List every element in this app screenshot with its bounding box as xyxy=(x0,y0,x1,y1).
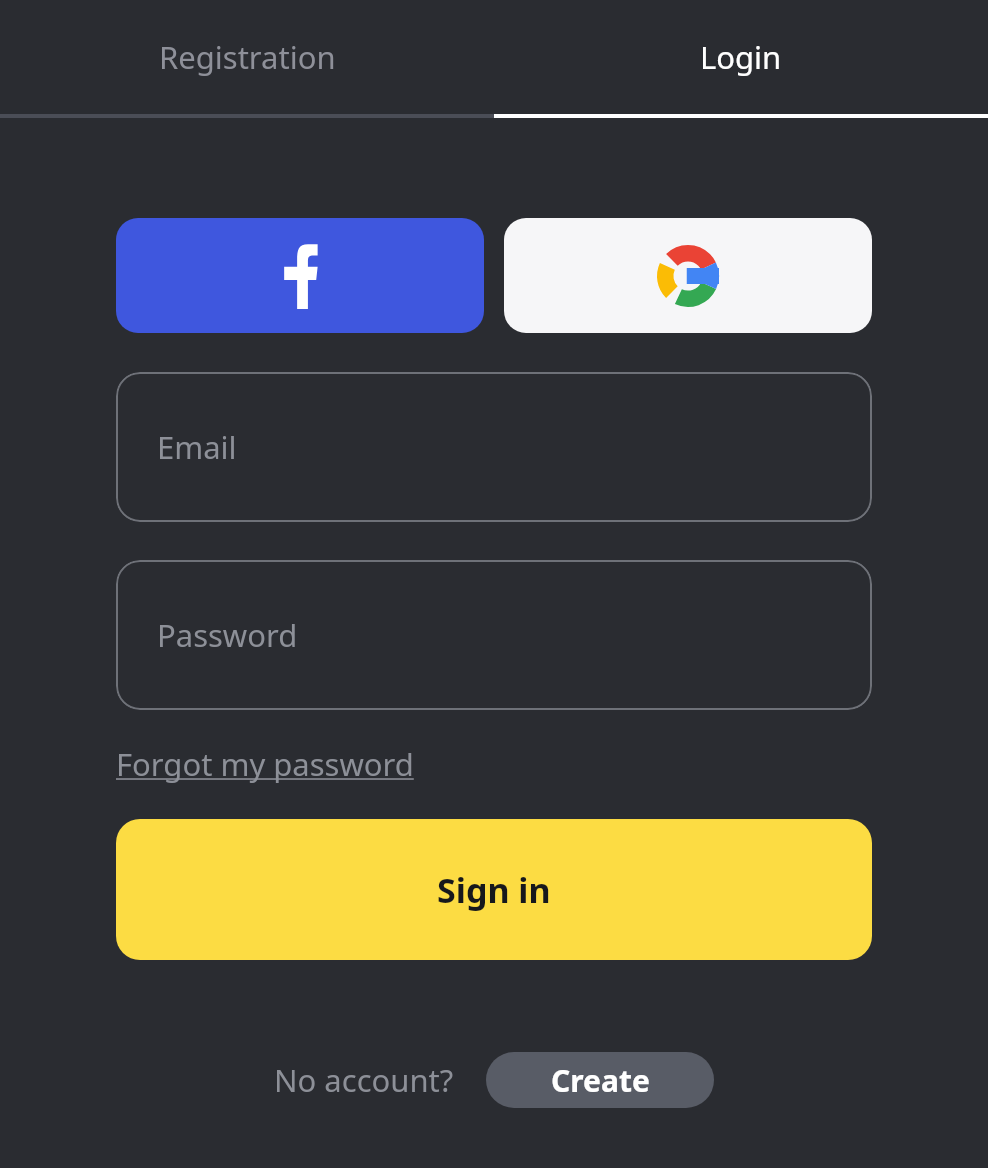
staticText: Registration xyxy=(159,36,336,78)
button[interactable]: Sign in with Google xyxy=(504,218,872,333)
staticText: Create xyxy=(551,1060,650,1101)
staticText: Forgot my password xyxy=(116,743,414,785)
button[interactable]: Sign in with Facebook xyxy=(116,218,484,333)
staticText: No account? xyxy=(274,1059,454,1101)
button[interactable]: Login xyxy=(494,0,988,114)
button[interactable]: Sign in xyxy=(116,819,872,960)
button[interactable]: Password xyxy=(116,560,872,710)
button[interactable]: Registration xyxy=(0,0,494,114)
staticText: Password xyxy=(157,614,298,656)
button[interactable]: Email xyxy=(116,372,872,522)
staticText: Email xyxy=(157,426,237,468)
staticText: Login xyxy=(700,36,782,78)
button[interactable]: Create xyxy=(486,1052,714,1108)
button[interactable]: Forgot my password xyxy=(116,735,414,793)
staticText: Sign in xyxy=(437,867,551,913)
